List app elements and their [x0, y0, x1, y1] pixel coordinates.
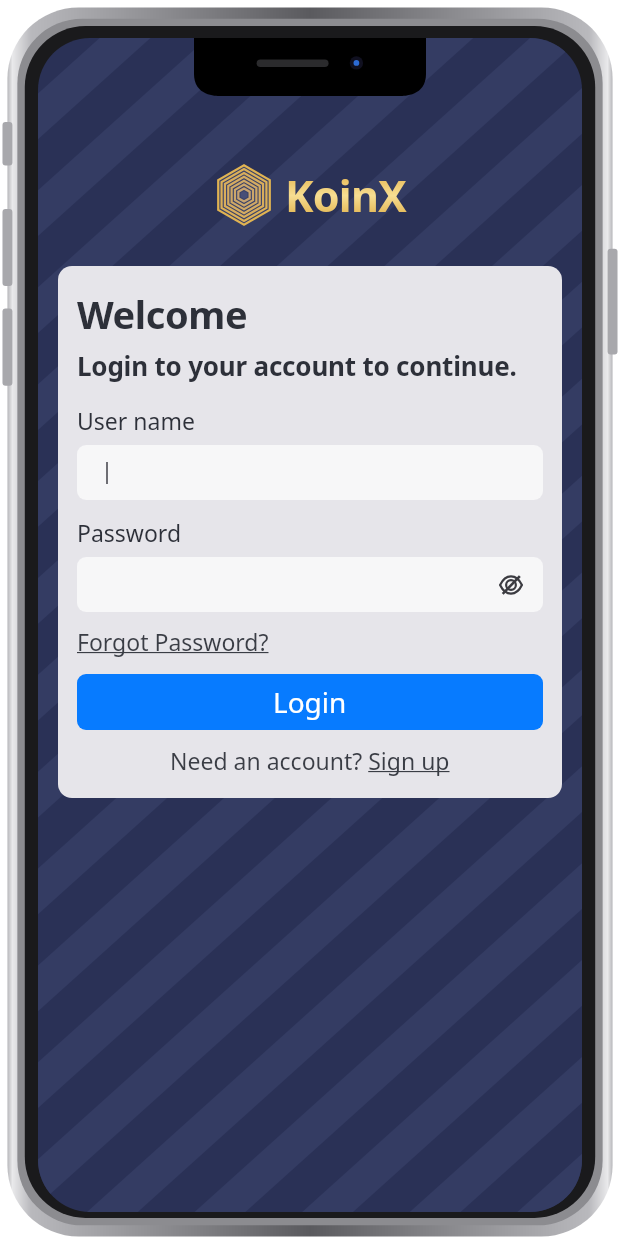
staticText: User name: [77, 405, 195, 436]
button[interactable]: [77, 445, 543, 500]
staticText: Welcome: [77, 288, 248, 340]
staticText: Login to your account to continue.: [77, 348, 517, 383]
button[interactable]: Show password: [77, 557, 543, 612]
button[interactable]: Show password: [496, 570, 526, 600]
button[interactable]: Forgot Password?: [77, 626, 269, 657]
staticText: Forgot Password?: [77, 626, 269, 657]
other: KoinX logo: [213, 164, 275, 226]
staticText: KoinX: [285, 166, 407, 225]
staticText: Password: [77, 517, 182, 548]
staticText: Need an account? Sign up: [170, 745, 450, 776]
button[interactable]: Login: [77, 674, 543, 730]
button[interactable]: Need an account? Sign up: [77, 745, 543, 776]
staticText: Login: [273, 683, 347, 721]
